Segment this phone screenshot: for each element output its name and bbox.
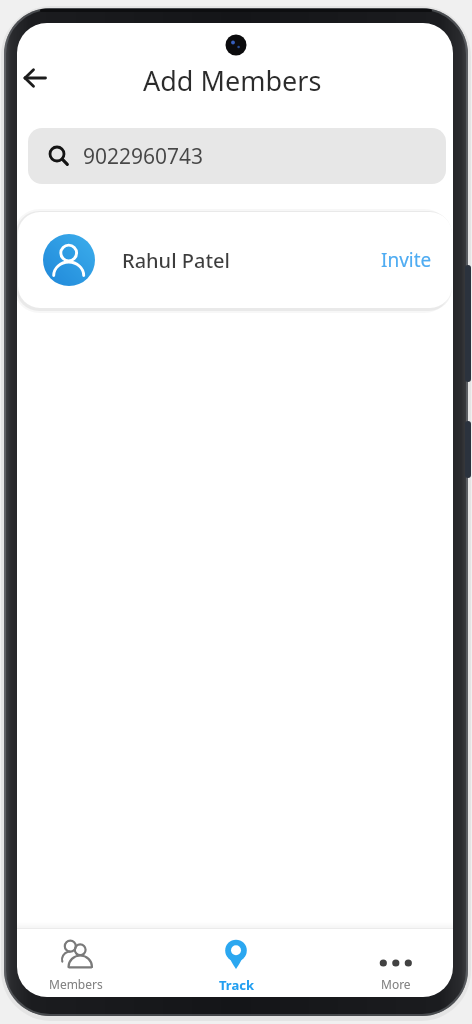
staticText: Add Members xyxy=(143,62,322,96)
button[interactable]: 9022960743 xyxy=(28,128,446,184)
staticText: Invite xyxy=(381,247,432,273)
button[interactable]: Invite xyxy=(352,240,432,280)
staticText: Members xyxy=(49,976,103,992)
button[interactable]: Rahul Patel xyxy=(18,212,452,308)
staticText: More xyxy=(381,976,411,992)
staticText: 9022960743 xyxy=(83,142,204,171)
button[interactable]: Members xyxy=(31,931,121,993)
button[interactable]: More xyxy=(351,931,441,993)
button[interactable]: Track xyxy=(191,931,281,993)
button[interactable] xyxy=(21,66,49,90)
staticText: Track xyxy=(219,976,254,992)
staticText: Rahul Patel xyxy=(122,247,230,274)
